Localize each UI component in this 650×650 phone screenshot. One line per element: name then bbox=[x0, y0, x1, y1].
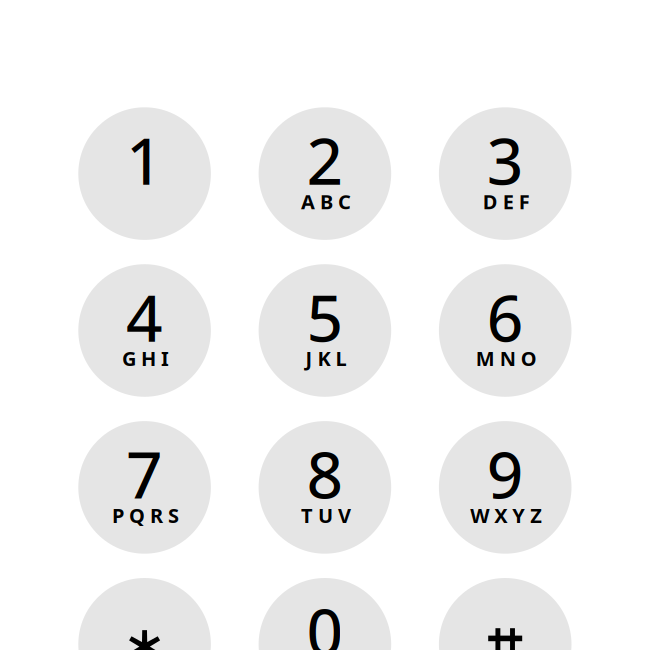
staticText: PQRS bbox=[112, 502, 179, 529]
button[interactable]: 6 M N O bbox=[439, 264, 571, 397]
staticText: MNO bbox=[476, 345, 537, 372]
staticText: 1 bbox=[126, 116, 163, 204]
staticText: 7 bbox=[126, 430, 163, 517]
button[interactable]: Pound bbox=[439, 578, 571, 650]
staticText: 2 bbox=[306, 116, 343, 204]
button[interactable]: 3 D E F bbox=[439, 107, 571, 240]
button[interactable]: 9 W X Y Z bbox=[439, 421, 571, 554]
staticText: 8 bbox=[306, 430, 343, 517]
button[interactable]: 5 J K L bbox=[259, 264, 391, 397]
staticText: 6 bbox=[487, 273, 524, 360]
button[interactable]: 8 T U V bbox=[259, 421, 391, 554]
staticText: DEF bbox=[483, 188, 530, 215]
button[interactable]: 0 Plus bbox=[259, 578, 391, 650]
staticText: 0 bbox=[306, 587, 343, 650]
button[interactable]: 2 A B C bbox=[259, 107, 391, 240]
staticText: 9 bbox=[487, 430, 524, 517]
staticText: 5 bbox=[306, 273, 343, 360]
staticText: 3 bbox=[487, 116, 524, 204]
staticText: JKL bbox=[305, 345, 346, 372]
staticText: WXYZ bbox=[470, 502, 542, 529]
staticText: GHI bbox=[122, 345, 169, 372]
staticText: TUV bbox=[301, 502, 351, 529]
button[interactable]: 4 G H I bbox=[78, 264, 211, 397]
button[interactable]: 7 P Q R S bbox=[78, 421, 211, 554]
staticText: 4 bbox=[126, 273, 163, 360]
staticText: ABC bbox=[301, 188, 351, 215]
button[interactable]: 1 bbox=[78, 107, 211, 240]
button[interactable]: Star bbox=[78, 578, 211, 650]
